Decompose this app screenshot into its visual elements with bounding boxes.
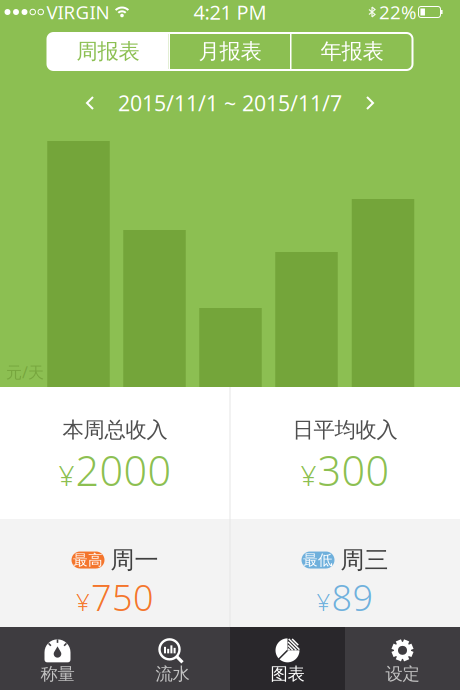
button[interactable]: 设定 <box>345 627 460 690</box>
staticText: 日平均收入 <box>292 417 397 443</box>
button[interactable]: 年报表 <box>291 33 412 70</box>
button[interactable]: 月报表 <box>170 33 290 70</box>
staticText: 本周总收入 <box>62 417 167 443</box>
staticText: 流水 <box>155 663 189 685</box>
staticText: 周一 <box>110 545 158 575</box>
staticText: 年报表 <box>320 38 383 65</box>
staticText: 89 <box>331 573 373 621</box>
staticText: 750 <box>91 573 154 621</box>
staticText: 元/天 <box>6 361 44 383</box>
staticText: 22% <box>379 0 417 24</box>
button[interactable]: Next week <box>355 93 385 113</box>
staticText: 周报表 <box>76 38 139 65</box>
staticText: ¥ <box>76 586 90 618</box>
staticText: VIRGIN <box>46 0 109 24</box>
staticText: 月报表 <box>198 38 261 65</box>
staticText: 图表 <box>270 663 304 685</box>
staticText: 设定 <box>385 663 419 685</box>
button[interactable]: 周报表 <box>47 33 168 70</box>
button[interactable]: Previous week <box>75 93 105 113</box>
staticText: 最低 <box>303 551 333 569</box>
button[interactable]: 称量 <box>0 627 115 690</box>
staticText: ¥ <box>58 457 74 494</box>
staticText: 2015/11/1 ~ 2015/11/7 <box>118 89 342 117</box>
button[interactable]: 流水 <box>115 627 230 690</box>
staticText: ¥ <box>300 457 316 494</box>
staticText: 300 <box>317 443 389 497</box>
staticText: ¥ <box>316 586 330 618</box>
staticText: 4:21 PM <box>193 0 266 25</box>
button[interactable]: 图表 <box>230 627 345 690</box>
staticText: 最高 <box>73 551 103 569</box>
staticText: 2000 <box>75 443 171 497</box>
staticText: 称量 <box>40 663 74 685</box>
staticText: 周三 <box>340 545 388 575</box>
